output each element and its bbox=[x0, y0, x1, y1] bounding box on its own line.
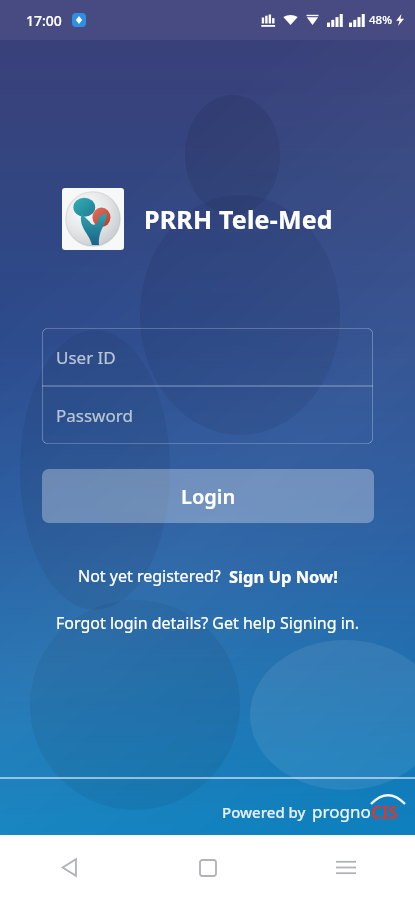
button[interactable]: Back bbox=[0, 835, 139, 900]
staticText: 48% bbox=[369, 12, 392, 28]
staticText: PRRH Tele-Med bbox=[144, 202, 333, 236]
button[interactable]: Password bbox=[42, 386, 373, 444]
button[interactable]: Forgot login details? Get help Signing i… bbox=[46, 608, 369, 638]
staticText: Sign Up Now! bbox=[229, 565, 338, 587]
staticText: Not yet registered? bbox=[78, 565, 221, 587]
staticText: progno bbox=[312, 800, 371, 823]
staticText: User ID bbox=[56, 346, 116, 369]
staticText: 17:00 bbox=[26, 11, 62, 30]
staticText: CIS bbox=[371, 801, 398, 824]
button[interactable]: Recent apps bbox=[277, 835, 415, 900]
staticText: Password bbox=[56, 404, 133, 427]
button[interactable]: Not yet registered? bbox=[68, 561, 348, 591]
staticText: Powered by bbox=[222, 802, 306, 822]
staticText: Login bbox=[181, 483, 236, 510]
button[interactable]: User ID bbox=[42, 328, 373, 386]
staticText: Forgot login details? Get help Signing i… bbox=[56, 612, 359, 634]
button[interactable]: Login bbox=[42, 469, 374, 523]
button[interactable]: Home bbox=[139, 835, 277, 900]
